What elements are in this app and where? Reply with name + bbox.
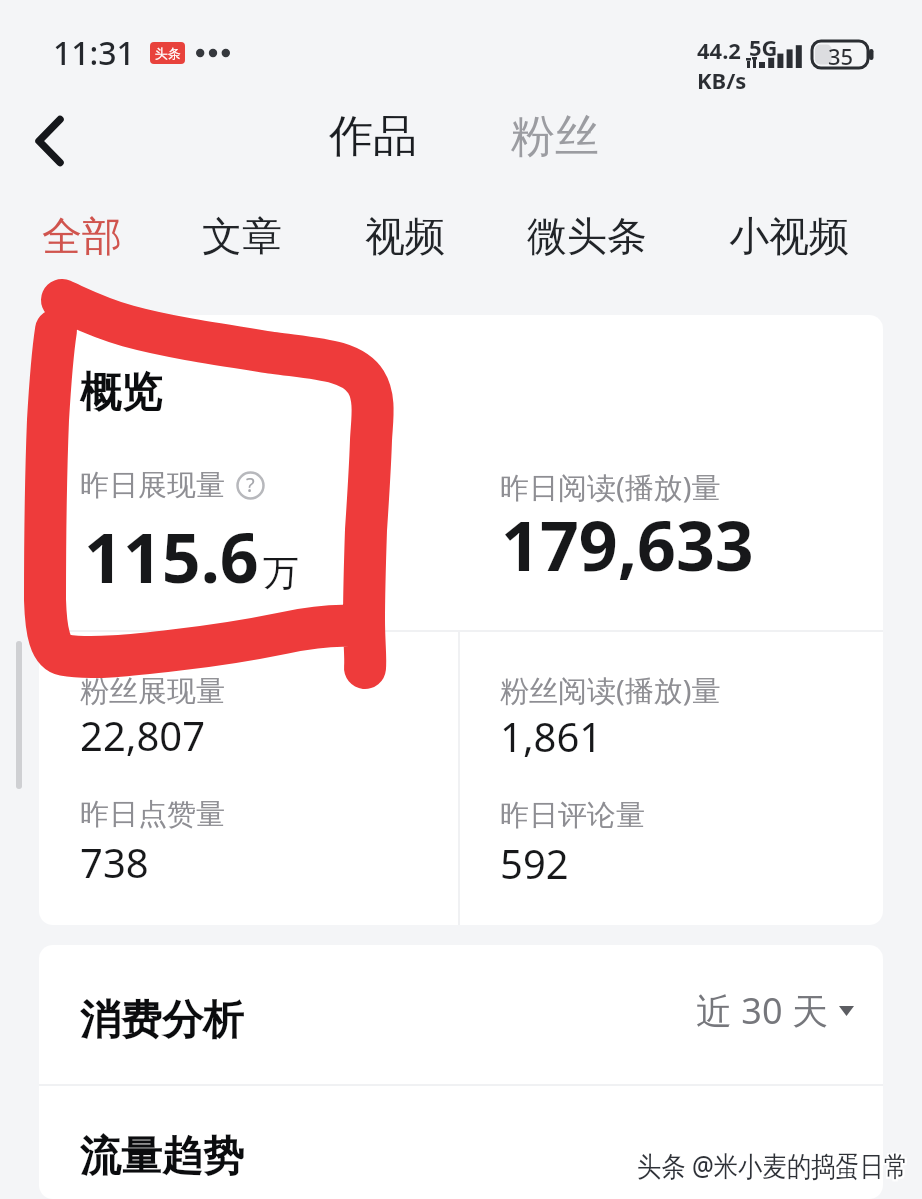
staticText: 万 — [263, 550, 299, 595]
staticText: 粉丝展现量 — [80, 673, 225, 710]
staticText: 粉丝阅读(播放)量 — [500, 670, 721, 710]
button[interactable]: 流量趋势 — [39, 1085, 883, 1199]
staticText: 头条 @米小麦的捣蛋日常 — [635, 1149, 907, 1186]
staticText: 微头条 — [527, 211, 647, 261]
button[interactable]: Help — [236, 471, 265, 500]
button[interactable]: 视频 — [350, 198, 460, 274]
staticText: 作品 — [329, 109, 417, 164]
button[interactable]: 微头条 — [513, 198, 661, 274]
staticText: 头条 — [155, 45, 181, 61]
button[interactable]: 作品 — [311, 100, 435, 172]
button[interactable]: 粉丝 — [493, 100, 617, 172]
staticText: 昨日阅读(播放)量 — [500, 467, 721, 507]
staticText: 头条 @米小麦的捣蛋日常 — [637, 1149, 908, 1186]
staticText: 昨日评论量 — [500, 797, 645, 834]
staticText: 全部 — [42, 211, 122, 261]
staticText: 115.6 — [84, 510, 259, 603]
staticText: 流量趋势 — [80, 1131, 244, 1183]
button[interactable]: 小视频 — [715, 198, 863, 274]
staticText: 738 — [80, 835, 149, 889]
staticText: 头条 @米小麦的捣蛋日常 — [635, 1145, 907, 1183]
button[interactable]: 近 30 天 — [696, 986, 854, 1035]
staticText: 消费分析 — [80, 995, 244, 1047]
staticText: 头条 @米小麦的捣蛋日常 — [635, 1147, 907, 1185]
staticText: 小视频 — [729, 211, 849, 261]
staticText: ? — [246, 471, 255, 498]
staticText: 粉丝 — [511, 109, 599, 164]
staticText: 视频 — [365, 211, 445, 261]
button[interactable]: Back — [12, 105, 90, 177]
staticText: 头条 @米小麦的捣蛋日常 — [637, 1147, 908, 1185]
staticText: 昨日点赞量 — [80, 796, 225, 833]
staticText: 头条 @米小麦的捣蛋日常 — [639, 1145, 910, 1183]
staticText: KB/s — [697, 65, 747, 95]
staticText: 近 30 天 — [696, 986, 828, 1035]
staticText: 头条 @米小麦的捣蛋日常 — [637, 1145, 908, 1183]
button[interactable]: 全部 — [27, 198, 137, 274]
staticText: 1,861 — [500, 709, 603, 763]
button[interactable]: 文章 — [187, 198, 297, 274]
staticText: 22,807 — [80, 708, 206, 762]
staticText: 35 — [828, 41, 854, 68]
staticText: 文章 — [202, 211, 282, 261]
staticText: 5G — [749, 32, 778, 62]
staticText: 592 — [500, 836, 569, 890]
staticText: 44.2 — [697, 35, 741, 65]
staticText: 179,633 — [501, 498, 754, 591]
staticText: 昨日展现量 — [80, 467, 225, 504]
staticText: 头条 @米小麦的捣蛋日常 — [639, 1147, 910, 1185]
staticText: 11:31 — [53, 31, 135, 75]
button[interactable]: 消费分析 — [39, 945, 883, 1084]
staticText: 头条 @米小麦的捣蛋日常 — [639, 1149, 910, 1186]
staticText: 概览 — [80, 367, 162, 419]
